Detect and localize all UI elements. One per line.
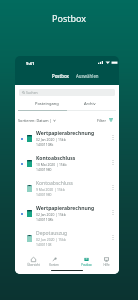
button[interactable]: Hilfe — [95, 256, 117, 271]
button[interactable]: Suchen — [19, 89, 115, 96]
staticText: Wertpapierabrechnung — [36, 205, 95, 212]
button[interactable]: More options — [109, 129, 117, 154]
button[interactable]: Archiv — [73, 97, 107, 109]
staticText: 10 Mai 2020 | 15kb — [36, 162, 67, 167]
staticText: 02 Jan 2020 | 15kb — [36, 212, 66, 217]
staticText: 9:41 — [26, 61, 35, 67]
button[interactable]: More options — [109, 179, 117, 204]
staticText: Konten — [49, 263, 59, 267]
staticText: Wertpapierabrechnung — [36, 130, 95, 137]
button[interactable]: Auswählen — [76, 69, 99, 83]
button[interactable]: Wertpapierabrechnung — [15, 204, 119, 229]
staticText: Postbox — [52, 12, 87, 24]
staticText: Kontoabschluss — [36, 155, 76, 162]
staticText: 02 Jan 2020 | 15kb — [36, 137, 66, 142]
button[interactable]: Wertpapierabrechnung — [15, 129, 119, 154]
button[interactable]: Konten — [43, 256, 65, 271]
button[interactable]: More options — [109, 229, 117, 254]
staticText: Kontoabschluss — [36, 180, 73, 187]
button[interactable]: Kontoabschluss — [15, 179, 119, 204]
staticText: 14001980 — [36, 167, 52, 172]
button[interactable]: Sortieren: Datum | — [18, 116, 56, 124]
staticText: Übersicht — [27, 263, 40, 267]
button[interactable]: Postbox — [52, 69, 69, 83]
button[interactable]: More options — [109, 204, 117, 229]
button[interactable]: Postbox — [75, 256, 97, 271]
staticText: 14001108k — [36, 217, 54, 222]
staticText: Depotauszug — [36, 230, 68, 237]
button[interactable]: Übersicht — [22, 256, 44, 271]
staticText: Auswählen — [76, 73, 99, 79]
button[interactable]: Kontoabschluss — [15, 154, 119, 179]
button[interactable]: Filter — [97, 116, 113, 124]
button[interactable]: Depotauszug — [15, 229, 119, 254]
staticText: 14001980 — [36, 192, 52, 197]
button[interactable]: More options — [109, 154, 117, 179]
staticText: Sortieren: Datum | — [18, 118, 52, 123]
button[interactable]: Posteingang — [29, 97, 64, 109]
staticText: Suchen — [26, 90, 38, 95]
staticText: 14001108k — [36, 142, 54, 147]
staticText: Postbox — [52, 73, 69, 79]
staticText: Posteingang — [35, 101, 59, 106]
staticText: Filter — [97, 118, 107, 123]
staticText: Postbox — [81, 263, 92, 267]
staticText: Hilfe — [103, 263, 110, 267]
staticText: 9 Mai 2020 | 15kb — [36, 187, 65, 192]
staticText: 14001108 — [36, 242, 52, 247]
staticText: 02 Jun 2020 | 15kb — [36, 237, 66, 242]
staticText: Archiv — [84, 101, 96, 106]
